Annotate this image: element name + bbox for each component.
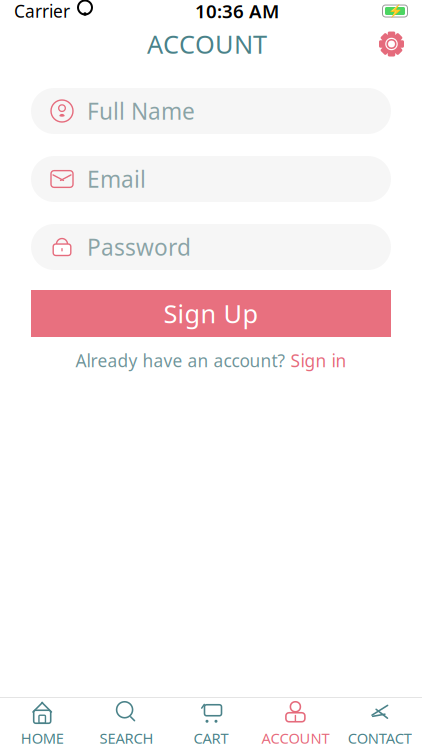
staticText: CONTACT (348, 728, 412, 748)
staticText: ACCOUNT (261, 728, 329, 748)
button[interactable]: CONTACT (338, 694, 422, 750)
staticText: ⚡ (387, 4, 402, 18)
staticText: Email (87, 164, 146, 194)
staticText: Password (87, 232, 191, 262)
staticText: Sign Up (163, 297, 258, 330)
button[interactable]: Password (31, 224, 391, 270)
staticText: Full Name (87, 96, 195, 126)
button[interactable]: Email (31, 156, 391, 202)
staticText: ACCOUNT (147, 27, 267, 61)
button[interactable]: Already have an account? (65, 337, 356, 378)
staticText: CART (193, 728, 228, 748)
staticText: HOME (21, 728, 64, 748)
button[interactable]: Settings (369, 21, 414, 66)
button[interactable]: Sign Up (31, 290, 391, 337)
button[interactable]: HOME (0, 694, 84, 750)
button[interactable]: CART (169, 694, 253, 750)
staticText: SEARCH (100, 728, 154, 748)
button[interactable]: ACCOUNT (253, 694, 338, 750)
staticText: Carrier (14, 0, 70, 22)
staticText: 10:36 AM (195, 0, 279, 23)
button[interactable]: SEARCH (84, 694, 169, 750)
staticText: Sign in (290, 349, 346, 372)
button[interactable]: Full Name (31, 88, 391, 134)
staticText: Already have an account? (75, 349, 285, 372)
